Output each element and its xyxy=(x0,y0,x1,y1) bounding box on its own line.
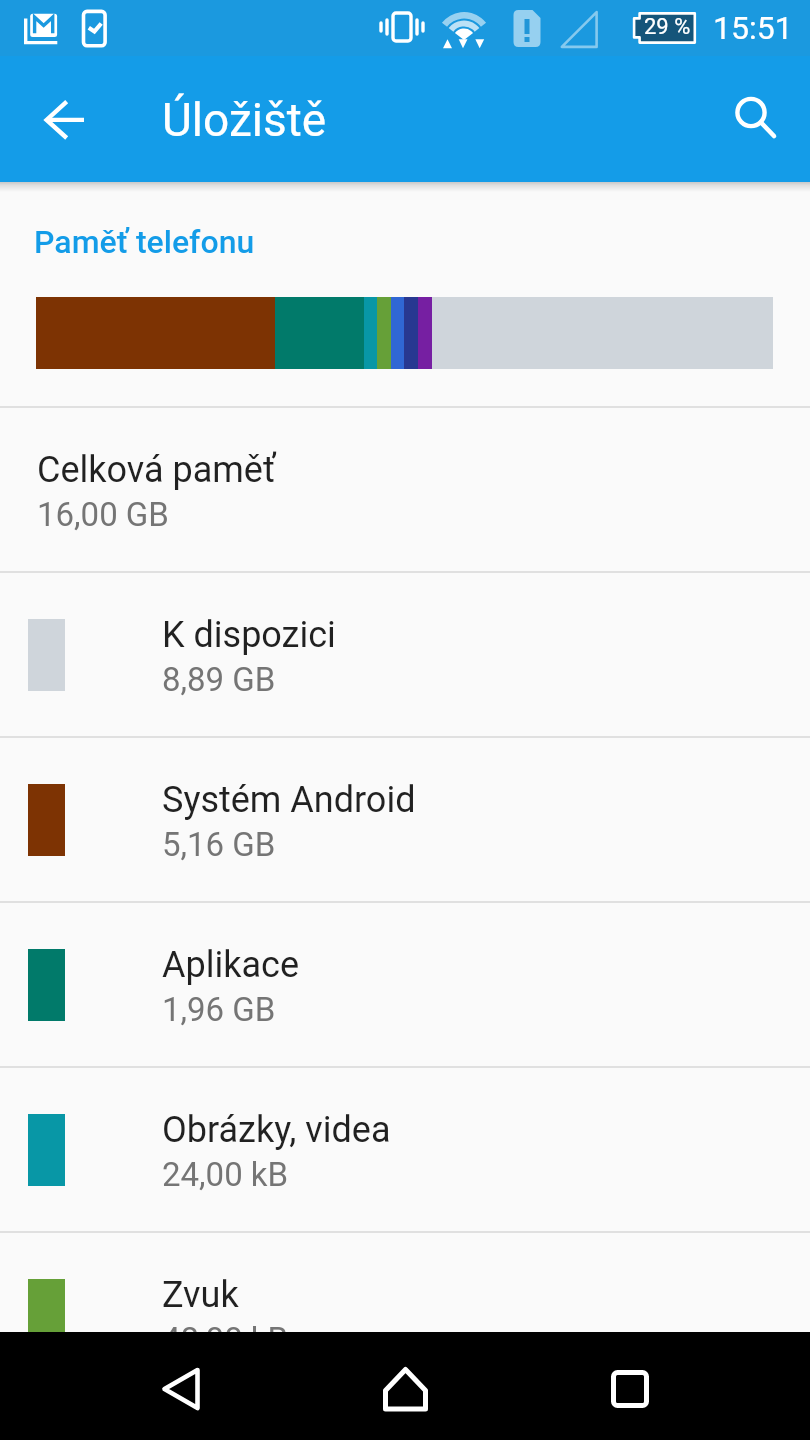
staticText: 16,00 GB xyxy=(37,495,169,534)
button[interactable]: Obrázky, videa xyxy=(0,1068,810,1231)
staticText: 8,89 GB xyxy=(162,660,276,699)
button[interactable]: Home xyxy=(369,1353,441,1425)
staticText: 5,16 GB xyxy=(162,825,276,864)
staticText: 1,96 GB xyxy=(162,990,276,1029)
button[interactable]: K dispozici xyxy=(0,573,810,736)
button[interactable]: Search xyxy=(720,83,792,155)
button[interactable]: Aplikace xyxy=(0,903,810,1066)
staticText: Systém Android xyxy=(162,779,416,821)
button[interactable]: Back xyxy=(145,1353,217,1425)
staticText: 15:51 xyxy=(713,9,793,47)
staticText: Aplikace xyxy=(162,944,299,986)
staticText: 24,00 kB xyxy=(162,1155,289,1194)
button[interactable]: Back xyxy=(27,83,99,155)
staticText: Zvuk xyxy=(162,1274,239,1316)
button[interactable]: Recents xyxy=(594,1353,666,1425)
staticText: Paměť telefonu xyxy=(34,223,255,261)
button[interactable]: Systém Android xyxy=(0,738,810,901)
staticText: Úložiště xyxy=(162,93,327,147)
staticText: 29 % xyxy=(644,14,691,40)
staticText: Celková paměť xyxy=(37,449,276,491)
staticText: Obrázky, videa xyxy=(162,1109,391,1151)
staticText: 48,00 kB xyxy=(162,1320,289,1359)
staticText: K dispozici xyxy=(162,614,336,656)
button[interactable]: Celková paměť xyxy=(0,408,810,571)
button[interactable]: Zvuk xyxy=(0,1233,810,1396)
